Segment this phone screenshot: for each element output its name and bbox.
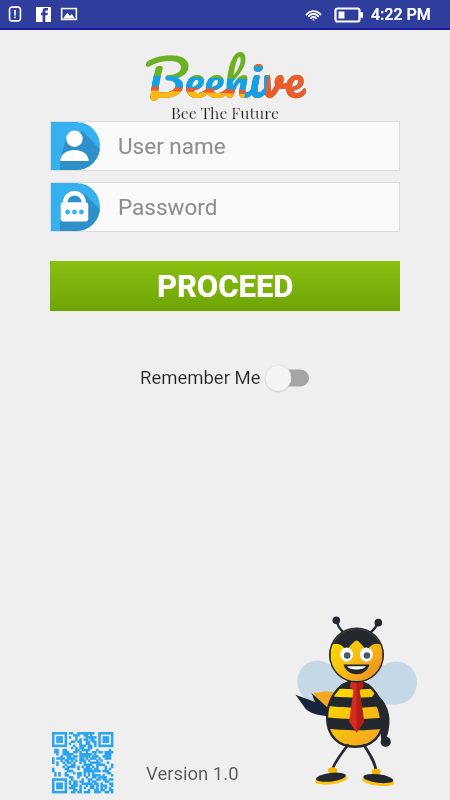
- staticText: 4:22 PM: [371, 5, 431, 24]
- button[interactable]: QR code: [52, 732, 113, 793]
- button[interactable]: Password: [50, 182, 400, 232]
- button[interactable]: PROCEED: [50, 261, 400, 311]
- button[interactable]: Remember Me: [136, 364, 315, 392]
- staticText: Password: [118, 194, 218, 220]
- staticText: Remember Me: [140, 367, 261, 389]
- staticText: User name: [118, 133, 226, 159]
- staticText: Version 1.0: [146, 763, 239, 785]
- button[interactable]: User name: [50, 121, 400, 171]
- staticText: PROCEED: [157, 268, 294, 304]
- staticText: Bee The Future: [171, 102, 279, 123]
